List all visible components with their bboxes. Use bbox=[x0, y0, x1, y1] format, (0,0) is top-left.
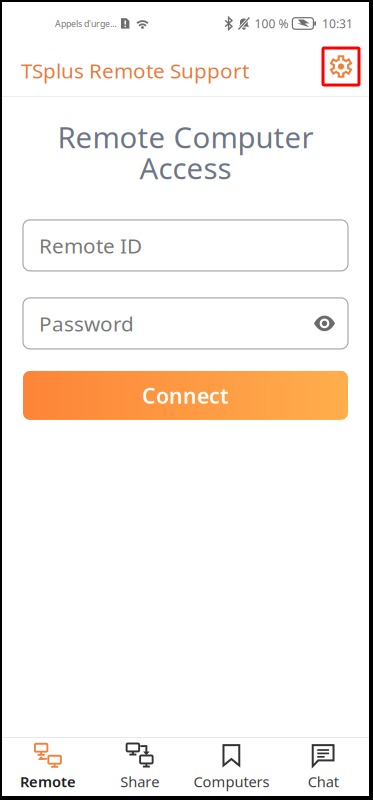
staticText: Remote ID bbox=[39, 231, 142, 259]
button[interactable]: Settings bbox=[323, 52, 359, 89]
staticText: Password bbox=[39, 309, 134, 337]
button[interactable]: Show password bbox=[314, 316, 335, 330]
staticText: Remote Computer bbox=[57, 117, 313, 157]
staticText: 10:31 bbox=[322, 15, 353, 32]
button[interactable]: Chat bbox=[277, 735, 369, 798]
staticText: Connect bbox=[142, 381, 229, 409]
button[interactable]: Computers bbox=[185, 735, 277, 798]
staticText: Remote bbox=[20, 772, 76, 791]
button[interactable]: Connect bbox=[23, 371, 348, 420]
staticText: Appels d'urge… bbox=[55, 17, 117, 29]
staticText: Share bbox=[120, 771, 159, 791]
staticText: Computers bbox=[193, 771, 269, 791]
staticText: TSplus Remote Support bbox=[21, 56, 249, 84]
button[interactable]: Share bbox=[94, 735, 186, 798]
button[interactable]: Remote bbox=[2, 736, 94, 798]
staticText: 100 % bbox=[254, 15, 288, 32]
staticText: Chat bbox=[308, 771, 339, 791]
staticText: Access bbox=[139, 148, 231, 188]
